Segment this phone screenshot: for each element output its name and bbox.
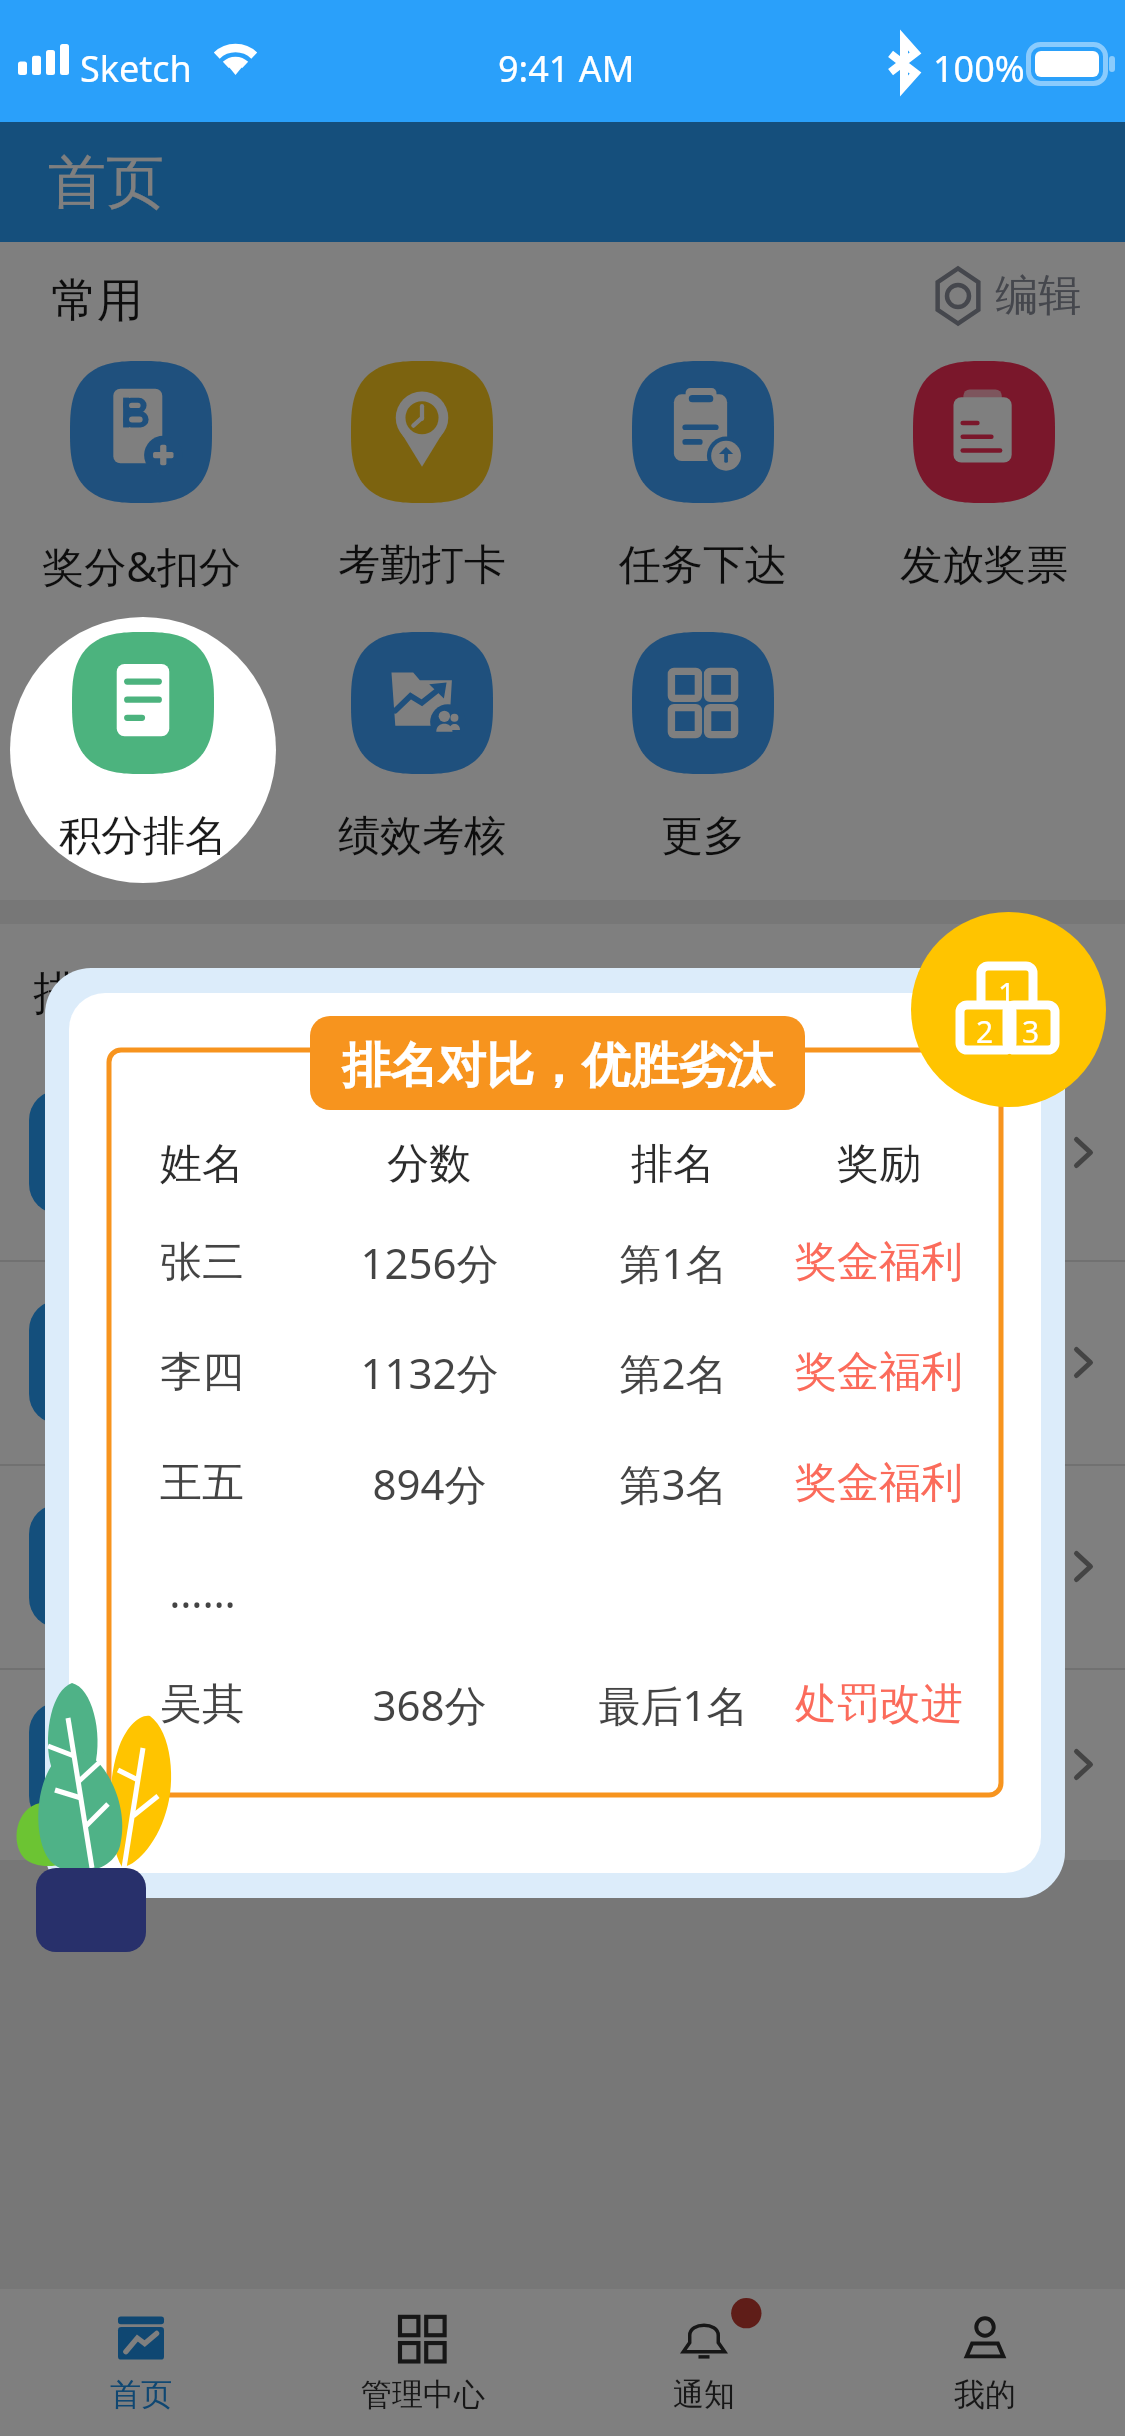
- staticText: 894分: [372, 1455, 487, 1512]
- staticText: 张三: [160, 1236, 244, 1289]
- button[interactable]: 我的: [844, 2289, 1125, 2436]
- staticText: 排名对比，优胜劣汰: [342, 1036, 774, 1096]
- staticText: 积分排名: [57, 810, 225, 863]
- staticText: 1: [998, 973, 1016, 1009]
- staticText: 常用: [51, 272, 143, 330]
- staticText: 最后1名: [598, 1676, 749, 1733]
- staticText: 2: [976, 1011, 994, 1047]
- staticText: 吴其: [160, 1678, 244, 1731]
- other: Ranking podium: [911, 912, 1106, 1107]
- button[interactable]: [0, 1464, 1125, 1668]
- staticText: 任务下达: [619, 539, 787, 592]
- button[interactable]: 发放奖票: [844, 534, 1124, 596]
- staticText: 奖金福利: [795, 1457, 963, 1510]
- staticText: 首页: [48, 146, 164, 219]
- staticText: 通知: [673, 2375, 735, 2414]
- staticText: 李四: [160, 1346, 244, 1399]
- staticText: 排行榜: [33, 965, 171, 1023]
- button[interactable]: 更多: [563, 805, 843, 867]
- button[interactable]: [0, 1260, 1125, 1464]
- staticText: 我的: [954, 2375, 1016, 2414]
- button[interactable]: [0, 1668, 1125, 1860]
- staticText: 姓名: [160, 1138, 244, 1191]
- staticText: 奖励: [837, 1138, 921, 1191]
- staticText: 奖金福利: [795, 1346, 963, 1399]
- staticText: 积分排名: [59, 810, 227, 863]
- button[interactable]: 绩效考核: [282, 805, 562, 867]
- staticText: 9:41 AM: [498, 44, 635, 93]
- staticText: 1256分: [360, 1234, 499, 1291]
- button[interactable]: 首页: [0, 2289, 282, 2436]
- button[interactable]: 管理中心: [282, 2289, 563, 2436]
- staticText: 排名: [631, 1138, 715, 1191]
- button[interactable]: 首页: [0, 122, 1125, 242]
- button[interactable]: 奖分&扣分: [1, 534, 281, 596]
- staticText: 第2名: [619, 1344, 728, 1401]
- staticText: 首页: [110, 2375, 172, 2414]
- button[interactable]: 积分排名: [1, 805, 281, 867]
- staticText: 编辑: [995, 269, 1081, 323]
- staticText: 考勤打卡: [338, 539, 506, 592]
- staticText: 管理中心: [361, 2375, 485, 2414]
- staticText: 处罚改进: [795, 1678, 963, 1731]
- button[interactable]: 任务下达: [563, 534, 843, 596]
- button[interactable]: 编辑: [933, 267, 1081, 325]
- button[interactable]: 考勤打卡: [282, 534, 562, 596]
- staticText: 368分: [372, 1676, 487, 1733]
- staticText: 1132分: [360, 1344, 499, 1401]
- staticText: 3: [1022, 1011, 1040, 1047]
- button[interactable]: 通知: [563, 2289, 844, 2436]
- staticText: 绩效考核: [338, 810, 506, 863]
- staticText: 第1名: [619, 1234, 728, 1291]
- staticText: Sketch: [80, 44, 192, 93]
- staticText: 发放奖票: [900, 539, 1068, 592]
- staticText: 更多: [661, 810, 745, 863]
- staticText: 分数: [387, 1138, 471, 1191]
- staticText: 100%: [933, 44, 1025, 93]
- button[interactable]: 排名对比，优胜劣汰: [310, 1016, 805, 1110]
- staticText: ……: [169, 1563, 236, 1620]
- staticText: 王五: [160, 1457, 244, 1510]
- staticText: 奖金福利: [795, 1236, 963, 1289]
- button[interactable]: 积分排名: [10, 617, 276, 883]
- staticText: 第3名: [619, 1455, 728, 1512]
- staticText: 奖分&扣分: [42, 537, 241, 594]
- button[interactable]: [0, 1045, 1125, 1260]
